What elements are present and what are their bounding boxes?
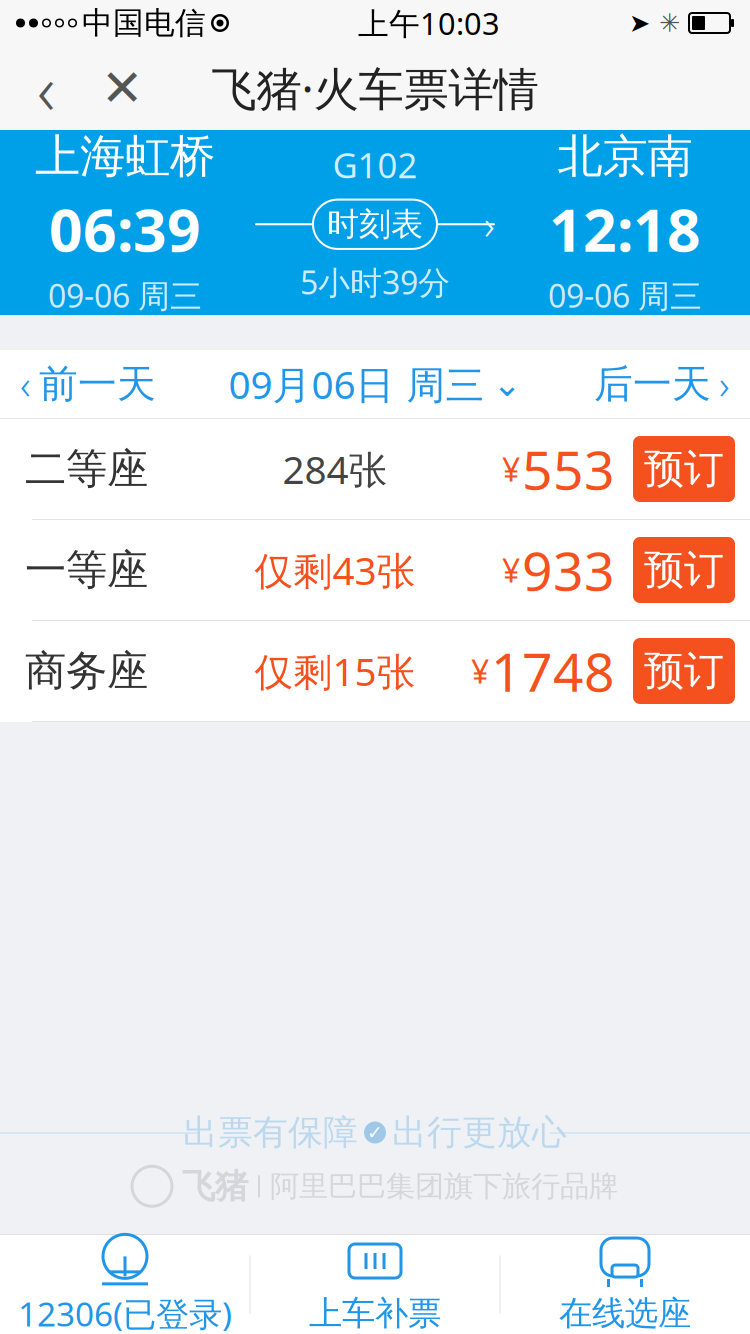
staticText: 仅剩15张 <box>254 645 415 697</box>
staticText: 仅剩43张 <box>254 544 415 596</box>
staticText: 06:39 <box>49 190 201 268</box>
staticText: 5小时39分 <box>300 261 450 303</box>
staticText: 预订 <box>644 444 724 493</box>
button[interactable]: 预订 <box>633 537 735 603</box>
staticText: 阿里巴巴集团旗下旅行品牌 <box>270 1168 618 1204</box>
staticText: ¥ <box>471 650 489 692</box>
button[interactable]: 关闭 <box>84 46 160 130</box>
staticText: 商务座 <box>25 646 148 696</box>
staticText: 中国电信 <box>82 4 206 42</box>
button[interactable]: 时刻表 <box>313 200 437 249</box>
staticText: 预订 <box>644 646 724 695</box>
staticText: 出行更放心 <box>392 1111 567 1154</box>
staticText: 前一天 <box>39 360 156 408</box>
button[interactable]: 预订 <box>633 436 735 502</box>
staticText: ¥ <box>502 549 520 591</box>
staticText: 上海虹桥 <box>35 128 215 184</box>
staticText: 1748 <box>491 636 615 706</box>
staticText: 飞猪 <box>182 1166 248 1207</box>
staticText: ✓ <box>367 1122 383 1143</box>
staticText: 一等座 <box>25 545 148 595</box>
staticText: 上车补票 <box>309 1293 441 1334</box>
button[interactable]: 在线选座 <box>500 1235 749 1333</box>
staticText: 09-06 周三 <box>48 274 202 316</box>
staticText: 预订 <box>644 545 724 594</box>
staticText: ¥ <box>502 448 520 490</box>
staticText: 在线选座 <box>559 1293 691 1334</box>
staticText: ➤ <box>629 9 650 37</box>
staticText: 553 <box>522 434 615 504</box>
button[interactable]: 预订 <box>633 638 735 704</box>
staticText: 09-06 周三 <box>548 274 702 316</box>
button[interactable]: 返回 <box>8 46 84 130</box>
button[interactable]: ‹ <box>0 350 176 418</box>
staticText: ⌄ <box>492 364 521 404</box>
staticText: ‹ <box>20 357 31 410</box>
staticText: 12306(已登录) <box>18 1291 232 1334</box>
button[interactable]: 09月06日 周三 <box>212 350 537 418</box>
staticText: G102 <box>332 142 417 188</box>
button[interactable]: 后一天 <box>574 350 750 418</box>
staticText: 后一天 <box>594 360 711 408</box>
staticText: › <box>719 357 730 410</box>
staticText: ✕ <box>101 59 143 117</box>
staticText: › <box>484 198 495 251</box>
staticText: 12:18 <box>549 190 701 268</box>
staticText: 二等座 <box>25 444 148 494</box>
staticText: 933 <box>522 535 615 605</box>
staticText: 飞猪·火车票详情 <box>211 58 538 118</box>
staticText: 出票有保障 <box>183 1111 358 1154</box>
staticText: 北京南 <box>557 128 692 184</box>
button[interactable]: 上车补票 <box>250 1235 499 1333</box>
staticText: 上午10:03 <box>358 3 500 43</box>
staticText: 09月06日 周三 <box>228 358 484 410</box>
staticText: 284张 <box>282 443 387 495</box>
button[interactable]: 12306(已登录) <box>0 1235 249 1333</box>
staticText: ‹ <box>37 42 55 134</box>
staticText: ✳ <box>659 9 680 37</box>
staticText: 时刻表 <box>327 205 423 244</box>
